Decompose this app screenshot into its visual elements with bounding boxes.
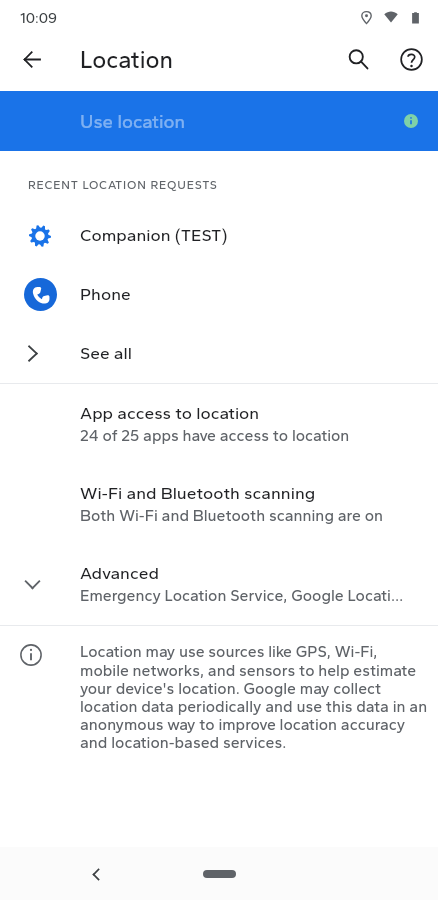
staticText: App access to location: [80, 403, 260, 424]
button[interactable]: Phone: [0, 265, 438, 324]
staticText: Companion (TEST): [80, 225, 228, 246]
button[interactable]: App access to location: [0, 384, 438, 464]
staticText: Phone: [80, 284, 131, 305]
staticText: Location: [80, 45, 174, 74]
button[interactable]: Help: [387, 35, 435, 83]
button[interactable]: Wi-Fi and Bluetooth scanning: [0, 464, 438, 544]
staticText: RECENT LOCATION REQUESTS: [28, 178, 218, 192]
button[interactable]: Companion (TEST): [0, 206, 438, 265]
button[interactable]: Home: [199, 862, 239, 886]
button[interactable]: Search: [339, 35, 387, 83]
staticText: Both Wi-Fi and Bluetooth scanning are on: [80, 506, 383, 525]
button[interactable]: Navigate up: [8, 35, 56, 83]
other: Info: [404, 114, 418, 128]
staticText: 10:09: [20, 9, 57, 26]
button[interactable]: Advanced: [0, 544, 438, 624]
staticText: Advanced: [80, 563, 159, 584]
button[interactable]: Back: [74, 852, 118, 896]
staticText: Wi-Fi and Bluetooth scanning: [80, 483, 316, 504]
button[interactable]: See all: [0, 324, 438, 383]
staticText: Use location: [80, 110, 186, 132]
button[interactable]: Use location: [0, 91, 438, 151]
staticText: Emergency Location Service, Google Locat…: [80, 586, 408, 605]
staticText: 24 of 25 apps have access to location: [80, 426, 350, 445]
staticText: Location may use sources like GPS, Wi-Fi…: [80, 642, 428, 752]
staticText: See all: [80, 343, 132, 364]
